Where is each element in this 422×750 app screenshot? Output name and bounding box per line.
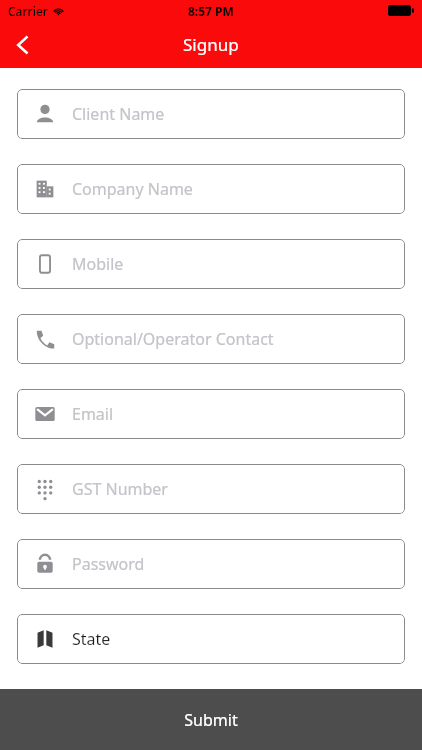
staticText: Email (72, 403, 114, 425)
staticText: Signup (183, 33, 239, 56)
button[interactable]: Email (17, 389, 405, 439)
staticText: Company Name (72, 178, 193, 200)
button[interactable]: Company Name (17, 164, 405, 214)
staticText: Submit (184, 709, 238, 731)
staticText: Mobile (72, 253, 124, 275)
button[interactable]: Client Name (17, 89, 405, 139)
button[interactable]: Submit (0, 689, 422, 750)
button[interactable]: GST Number (17, 464, 405, 514)
staticText: Carrier (8, 3, 48, 19)
button[interactable]: Optional/Operator Contact (17, 314, 405, 364)
button[interactable]: Mobile (17, 239, 405, 289)
staticText: Client Name (72, 103, 165, 125)
button[interactable]: Back (0, 22, 46, 68)
button[interactable]: State (17, 614, 405, 664)
staticText: 8:57 PM (188, 3, 234, 19)
staticText: GST Number (72, 478, 168, 500)
staticText: State (72, 628, 111, 650)
button[interactable]: Password (17, 539, 405, 589)
staticText: Optional/Operator Contact (72, 328, 274, 350)
staticText: Password (72, 553, 145, 575)
